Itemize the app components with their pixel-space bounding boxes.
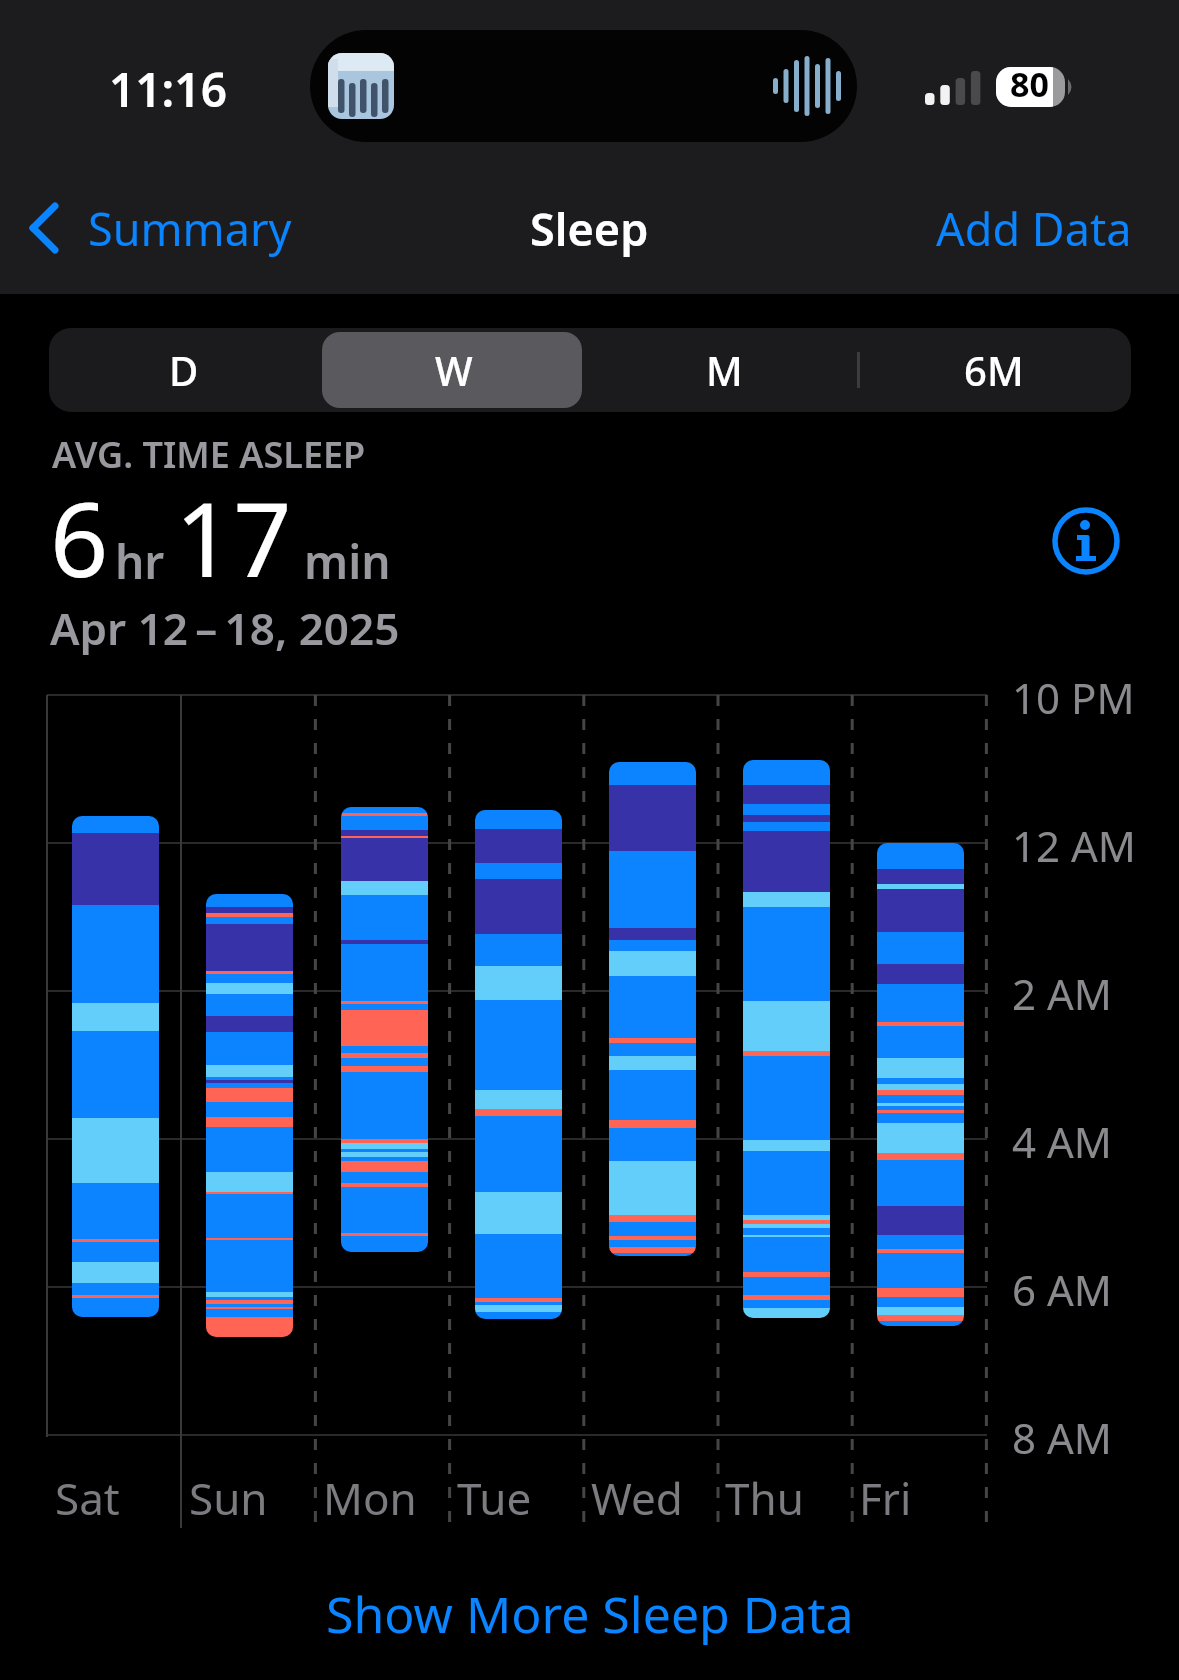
- staticText: Add Data: [936, 198, 1132, 258]
- staticText: Sat: [55, 1468, 120, 1528]
- button[interactable]: M: [589, 328, 859, 412]
- button[interactable]: [1052, 507, 1120, 575]
- staticText: 2 AM: [1012, 965, 1112, 1022]
- button[interactable]: Summary: [88, 198, 292, 258]
- button[interactable]: [28, 203, 62, 253]
- staticText: Sun: [189, 1468, 268, 1528]
- staticText: AVG. TIME ASLEEP: [52, 430, 366, 479]
- staticText: 6 AM: [1012, 1261, 1112, 1318]
- staticText: W: [435, 343, 473, 397]
- staticText: Thu: [725, 1468, 804, 1528]
- staticText: D: [169, 343, 199, 397]
- staticText: 8 AM: [1012, 1409, 1112, 1466]
- button[interactable]: Show More Sleep Data: [0, 1578, 1179, 1650]
- staticText: Fri: [859, 1468, 912, 1528]
- staticText: 10 PM: [1012, 669, 1135, 726]
- staticText: 4 AM: [1012, 1113, 1112, 1170]
- staticText: Apr 12 – 18, 2025: [50, 598, 400, 658]
- staticText: 6M: [964, 343, 1024, 397]
- button[interactable]: W: [319, 328, 589, 412]
- staticText: 80: [1010, 61, 1049, 107]
- staticText: min: [304, 530, 391, 593]
- staticText: Tue: [457, 1468, 532, 1528]
- staticText: 11:16: [109, 58, 227, 118]
- staticText: Sleep: [530, 198, 649, 258]
- staticText: 12 AM: [1012, 817, 1136, 874]
- staticText: hr: [115, 530, 165, 593]
- staticText: Summary: [88, 198, 292, 258]
- staticText: M: [706, 343, 743, 397]
- button[interactable]: 6M: [859, 328, 1129, 412]
- staticText: 17: [175, 468, 292, 607]
- staticText: Wed: [591, 1468, 683, 1528]
- staticText: Mon: [323, 1468, 417, 1528]
- staticText: Show More Sleep Data: [326, 1580, 854, 1648]
- button[interactable]: Add Data: [917, 198, 1132, 258]
- staticText: 6: [50, 468, 109, 607]
- button[interactable]: D: [49, 328, 319, 412]
